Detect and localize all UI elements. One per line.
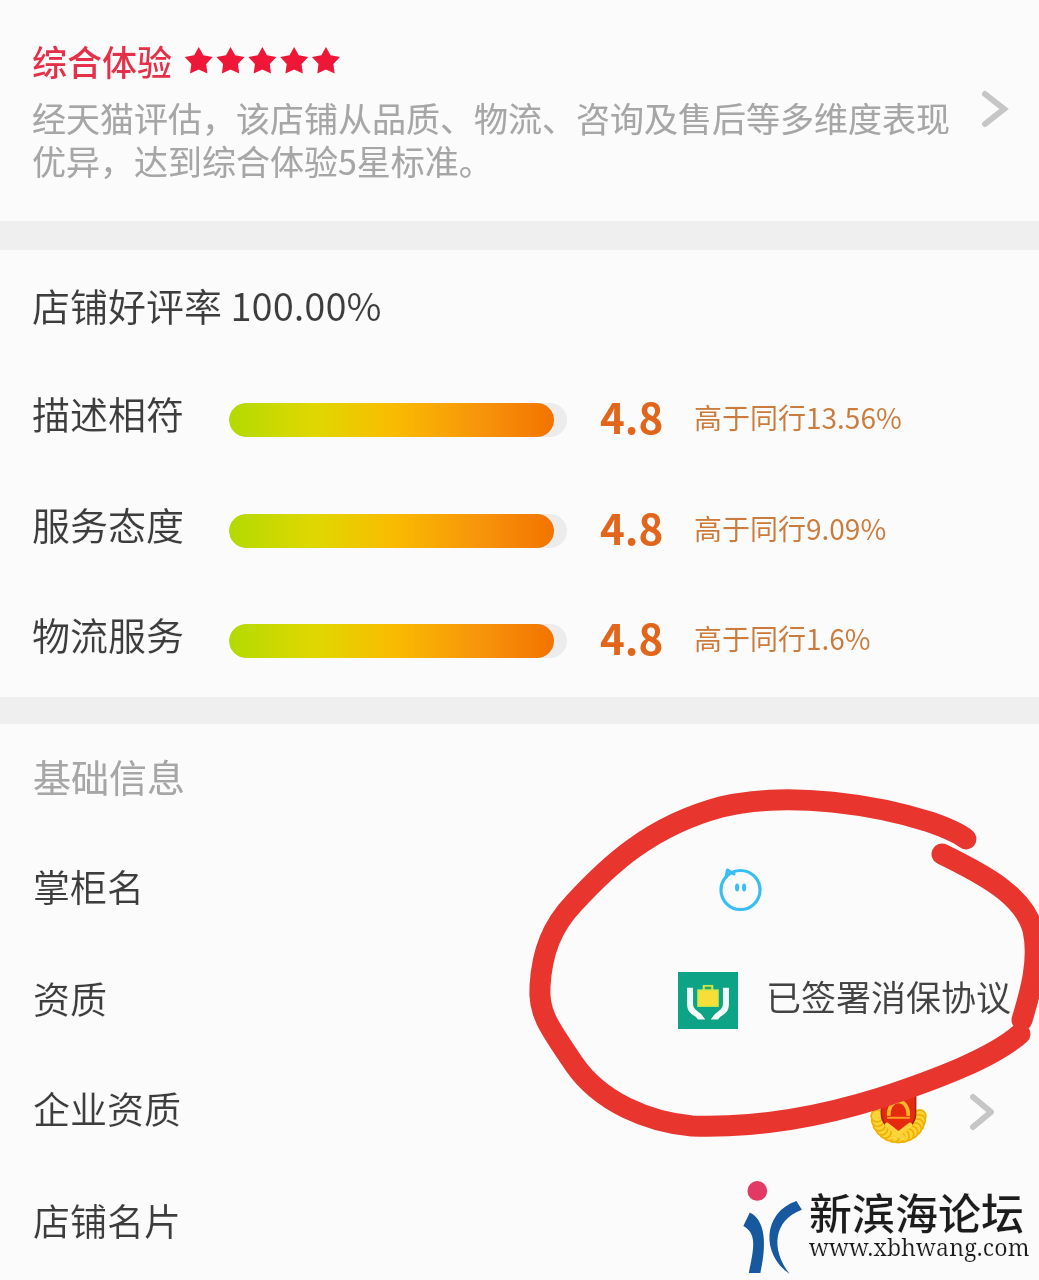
- staticText: 已签署消保协议: [766, 970, 1012, 1021]
- button[interactable]: 掌柜名: [0, 834, 1039, 944]
- staticText: 掌柜名: [33, 859, 144, 913]
- staticText: 高于同行9.09%: [694, 508, 887, 549]
- button[interactable]: Open 企业资质: [970, 1094, 994, 1130]
- button[interactable]: 店铺名片: [0, 1168, 1039, 1278]
- other: Shop avatar: [712, 860, 766, 914]
- staticText: 4.8: [600, 385, 664, 446]
- staticText: www.xbhwang.com: [809, 1231, 1030, 1262]
- staticText: 店铺好评率 100.00%: [32, 277, 382, 332]
- button[interactable]: 描述相符: [0, 373, 1039, 453]
- button[interactable]: 服务态度: [0, 484, 1039, 564]
- other: View details: [982, 91, 1007, 127]
- staticText: 资质: [33, 971, 107, 1025]
- staticText: 高于同行13.56%: [694, 397, 902, 438]
- staticText: 基础信息: [33, 748, 186, 803]
- button[interactable]: 已签署消保协议: [678, 972, 1012, 1029]
- button[interactable]: 企业资质: [0, 1056, 1039, 1166]
- staticText: 4.8: [600, 496, 664, 557]
- staticText: 4.8: [600, 606, 664, 667]
- staticText: 高于同行1.6%: [694, 618, 871, 659]
- staticText: 店铺名片: [33, 1193, 181, 1247]
- staticText: 服务态度: [32, 496, 185, 551]
- button[interactable]: 综合体验: [0, 0, 1039, 221]
- button[interactable]: 物流服务: [0, 594, 1039, 674]
- staticText: 经天猫评估，该店铺从品质、物流、咨询及售后等多维度表现优异，达到综合体验5星标准…: [32, 93, 954, 184]
- staticText: 综合体验: [32, 35, 173, 86]
- staticText: 新滨海论坛: [809, 1180, 1024, 1242]
- staticText: 企业资质: [33, 1081, 181, 1135]
- button[interactable]: 资质: [0, 946, 1039, 1056]
- staticText: 物流服务: [32, 606, 185, 661]
- staticText: 描述相符: [32, 385, 185, 440]
